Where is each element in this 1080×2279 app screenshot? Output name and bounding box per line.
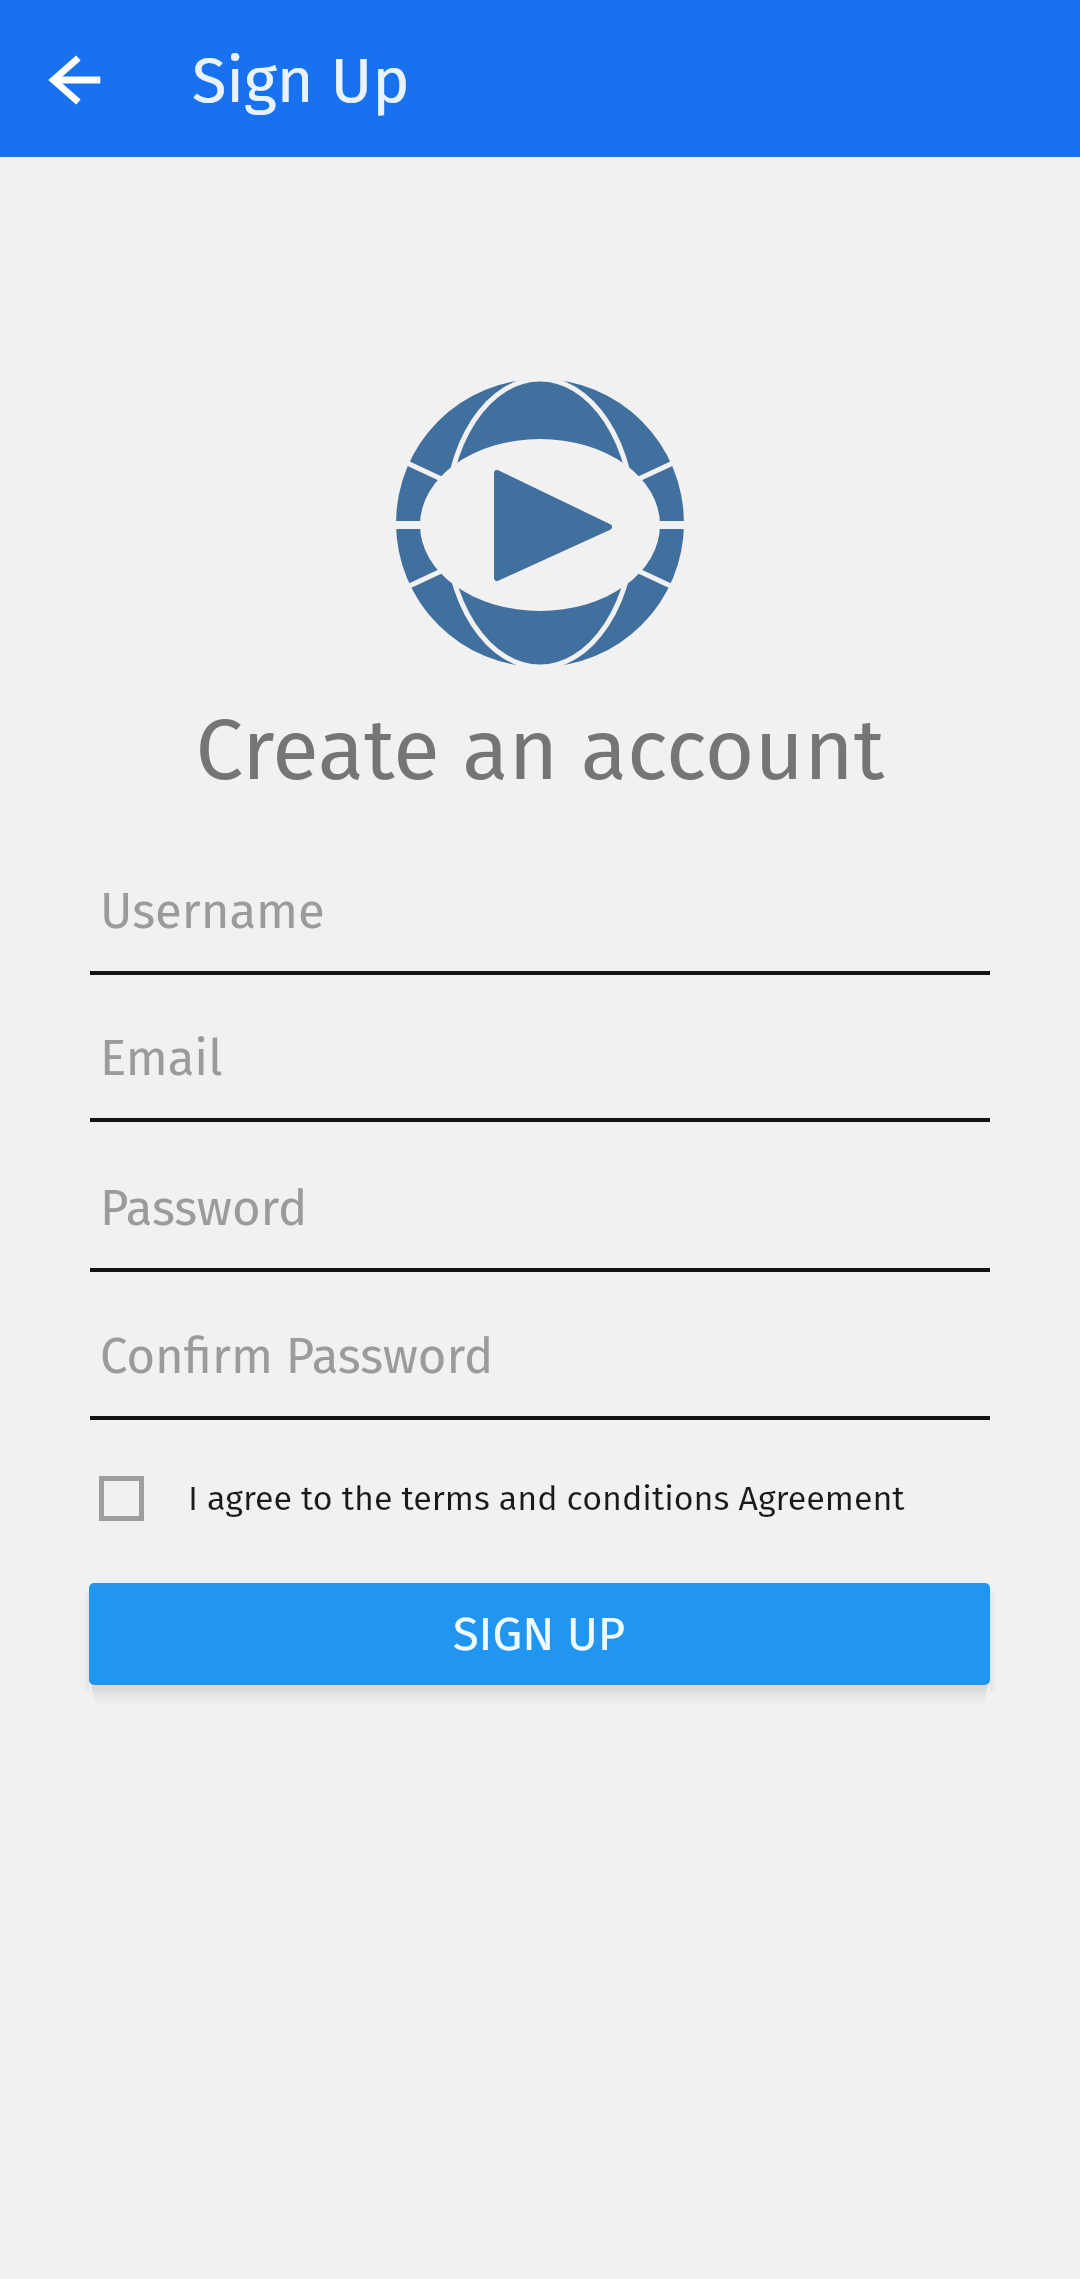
button[interactable]: Confirm Password bbox=[90, 1312, 990, 1420]
button[interactable]: Email bbox=[90, 1014, 990, 1122]
button[interactable]: I agree to the terms and conditions Agre… bbox=[90, 1462, 990, 1534]
staticText: Password bbox=[100, 1179, 308, 1238]
staticText: Confirm Password bbox=[100, 1327, 494, 1386]
staticText: Sign Up bbox=[192, 43, 410, 119]
staticText: Email bbox=[100, 1029, 223, 1088]
staticText: Create an account bbox=[0, 700, 1080, 802]
staticText: I agree to the terms and conditions Agre… bbox=[188, 1478, 905, 1519]
button[interactable]: Back bbox=[24, 35, 114, 125]
button[interactable]: Password bbox=[90, 1164, 990, 1272]
button[interactable]: Username bbox=[90, 867, 990, 975]
staticText: SIGN UP bbox=[453, 1606, 626, 1662]
staticText: Username bbox=[100, 882, 325, 941]
button[interactable]: SIGN UP bbox=[89, 1583, 990, 1685]
